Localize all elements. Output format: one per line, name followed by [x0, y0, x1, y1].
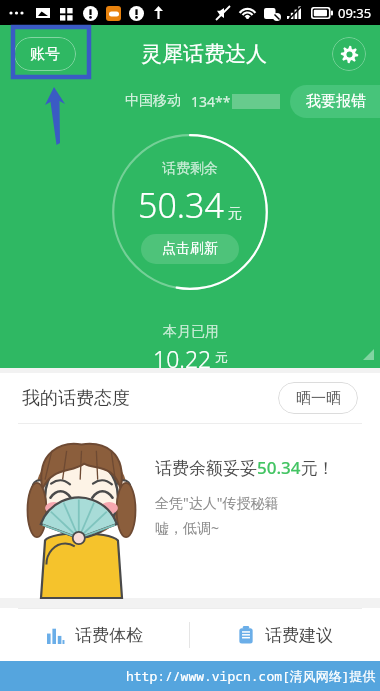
- staticText: 晒一晒: [296, 389, 341, 408]
- staticText: 话费体检: [75, 625, 143, 646]
- staticText: 话费余额妥妥50.34元！: [155, 456, 335, 479]
- button[interactable]: 话费体检: [0, 609, 189, 661]
- staticText: 我要报错: [306, 92, 366, 111]
- staticText: 10.22: [153, 343, 212, 368]
- staticText: 134**: [191, 92, 231, 111]
- button[interactable]: 账号: [14, 37, 76, 71]
- button[interactable]: 晒一晒: [278, 382, 358, 414]
- staticText: 账号: [30, 45, 60, 64]
- button[interactable]: 我要报错: [290, 85, 380, 118]
- staticText: http://www.vipcn.com[清风网络]提供: [126, 667, 376, 685]
- button[interactable]: 点击刷新: [141, 234, 239, 264]
- staticText: 点击刷新: [162, 240, 218, 258]
- staticText: 09:35: [338, 4, 372, 22]
- staticText: 中国移动: [125, 92, 181, 110]
- staticText: 话费建议: [265, 625, 333, 646]
- staticText: 50.34: [138, 182, 224, 228]
- staticText: 元: [215, 349, 228, 365]
- staticText: 全凭"达人"传授秘籍: [155, 493, 279, 512]
- staticText: 元: [228, 205, 242, 223]
- staticText: 我的话费态度: [22, 387, 130, 410]
- button[interactable]: 话费建议: [190, 609, 380, 661]
- staticText: 嘘，低调~: [155, 518, 220, 537]
- staticText: 灵犀话费达人: [141, 41, 267, 67]
- button[interactable]: 设置: [332, 37, 366, 71]
- staticText: 本月已用: [163, 323, 219, 341]
- staticText: 话费剩余: [162, 160, 218, 178]
